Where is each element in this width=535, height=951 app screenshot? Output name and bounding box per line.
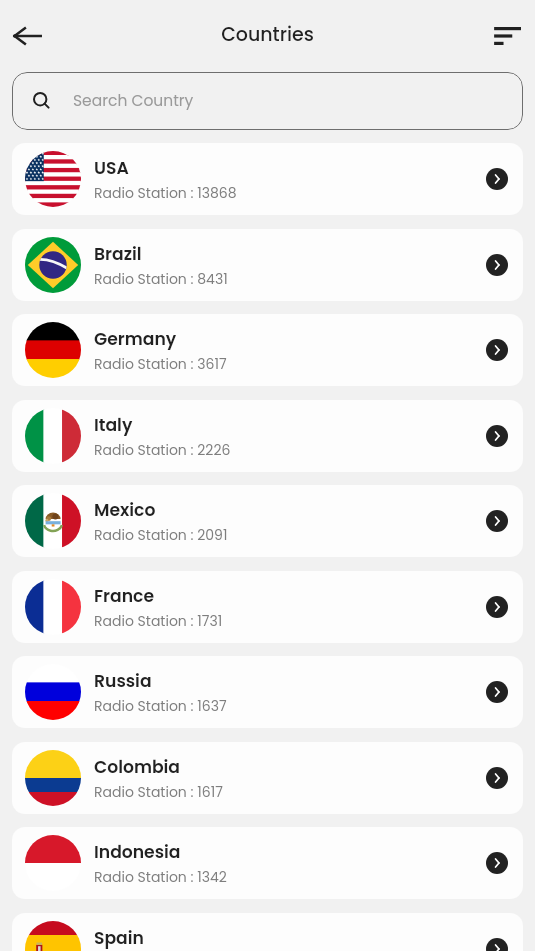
staticText: France: [94, 584, 155, 608]
staticText: Brazil: [94, 242, 142, 266]
staticText: Radio Station : 1617: [94, 782, 223, 802]
staticText: Mexico: [94, 498, 156, 522]
button[interactable]: Open Germany: [486, 339, 508, 361]
staticText: Search Country: [73, 90, 194, 112]
staticText: Radio Station : 1731: [94, 611, 223, 631]
button[interactable]: Open France: [486, 596, 508, 618]
staticText: Radio Station : 1637: [94, 696, 227, 716]
staticText: Russia: [94, 669, 152, 693]
staticText: Radio Station : 13868: [94, 183, 237, 203]
staticText: Radio Station : 2091: [94, 525, 228, 545]
staticText: Radio Station : 3617: [94, 354, 227, 374]
button[interactable]: France: [12, 571, 523, 643]
button[interactable]: Open Russia: [486, 681, 508, 703]
button[interactable]: Germany: [12, 314, 523, 386]
staticText: Countries: [221, 21, 314, 48]
button[interactable]: Spain: [12, 913, 523, 951]
button[interactable]: Open Mexico: [486, 510, 508, 532]
button[interactable]: Indonesia: [12, 827, 523, 899]
button[interactable]: Italy: [12, 400, 523, 472]
button[interactable]: Open Italy: [486, 425, 508, 447]
staticText: USA: [94, 156, 129, 180]
button[interactable]: Sort: [484, 13, 530, 59]
button[interactable]: Open USA: [486, 168, 508, 190]
staticText: Colombia: [94, 755, 181, 779]
button[interactable]: Open Spain: [486, 938, 508, 951]
staticText: Germany: [94, 327, 177, 351]
button[interactable]: Brazil: [12, 229, 523, 301]
button[interactable]: Open Colombia: [486, 767, 508, 789]
staticText: Italy: [94, 413, 133, 437]
button[interactable]: Colombia: [12, 742, 523, 814]
button[interactable]: Open Indonesia: [486, 852, 508, 874]
staticText: Radio Station : 1342: [94, 867, 227, 887]
staticText: Radio Station : 8431: [94, 269, 228, 289]
button[interactable]: Search Country: [12, 72, 523, 130]
staticText: Radio Station : 2226: [94, 440, 231, 460]
button[interactable]: Open Brazil: [486, 254, 508, 276]
button[interactable]: Back: [4, 13, 50, 59]
staticText: Indonesia: [94, 840, 181, 864]
button[interactable]: Mexico: [12, 485, 523, 557]
button[interactable]: Russia: [12, 656, 523, 728]
button[interactable]: USA: [12, 143, 523, 215]
staticText: Spain: [94, 926, 144, 950]
